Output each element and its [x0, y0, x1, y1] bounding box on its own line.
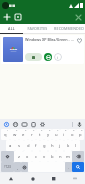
button[interactable]: d: [24, 140, 32, 151]
staticText: d: [27, 143, 30, 149]
button[interactable]: l: [72, 140, 80, 151]
staticText: f: [35, 143, 37, 149]
staticText: z: [18, 154, 20, 160]
button[interactable]: u: [52, 129, 60, 140]
button[interactable]: g: [40, 140, 48, 151]
staticText: i: [63, 132, 65, 138]
button[interactable]: Favorite: [76, 37, 82, 43]
button[interactable]: j: [56, 140, 64, 151]
button[interactable]: c: [32, 151, 40, 162]
button[interactable]: ,: [14, 162, 21, 172]
staticText: ?123: [4, 165, 11, 169]
button[interactable]: Close: [73, 12, 83, 22]
button[interactable]: Google: [2, 120, 11, 128]
staticText: c: [35, 154, 38, 160]
button[interactable]: FAVORITES: [23, 24, 52, 33]
button[interactable]: q: [1, 129, 10, 140]
staticText: p: [79, 132, 82, 138]
staticText: 8: [65, 129, 67, 132]
staticText: o: [71, 132, 74, 138]
button[interactable]: s: [15, 140, 24, 151]
button[interactable]: b: [48, 151, 56, 162]
staticText: .: [68, 165, 70, 170]
button[interactable]: y: [44, 129, 52, 140]
staticText: 9: [73, 129, 75, 132]
staticText: s: [18, 143, 21, 149]
staticText: a: [9, 143, 12, 149]
button[interactable]: ALL: [0, 24, 23, 33]
staticText: Windows XP Bliss/Green - Goo...: [25, 37, 75, 42]
button[interactable]: w: [10, 129, 19, 140]
staticText: 2: [16, 129, 18, 132]
button[interactable]: Home: [22, 173, 43, 184]
staticText: ALL: [8, 26, 15, 31]
staticText: y: [47, 132, 50, 138]
staticText: 6: [49, 129, 51, 132]
button[interactable]: r: [28, 129, 36, 140]
staticText: 5: [41, 129, 43, 132]
staticText: 1: [7, 129, 9, 132]
button[interactable]: Emoji: [21, 162, 28, 172]
button[interactable]: o: [68, 129, 76, 140]
button[interactable]: Windows XP Bliss/Green - Goo...: [1, 35, 84, 64]
button[interactable]: Settings: [38, 120, 47, 128]
button[interactable]: m: [64, 151, 72, 162]
button[interactable]: a: [6, 140, 15, 151]
staticText: v: [43, 154, 46, 160]
button[interactable]: Add: [2, 12, 12, 22]
button[interactable]: Keyboard switch: [64, 173, 85, 184]
button[interactable]: Recents: [43, 173, 64, 184]
staticText: g: [43, 143, 46, 149]
button[interactable]: Backspace: [72, 151, 84, 162]
button[interactable]: Shift: [1, 151, 14, 162]
button[interactable]: [25, 53, 42, 61]
staticText: e: [22, 132, 25, 138]
button[interactable]: Gallery: [13, 12, 23, 22]
staticText: FAVORITES: [27, 26, 48, 31]
staticText: 0: [81, 129, 83, 132]
button[interactable]: t: [36, 129, 44, 140]
staticText: j: [59, 143, 61, 149]
button[interactable]: Back: [0, 173, 22, 184]
button[interactable]: Voice input: [75, 120, 83, 128]
staticText: r: [31, 132, 33, 138]
staticText: u: [55, 132, 58, 138]
button[interactable]: .: [65, 162, 72, 172]
button[interactable]: h: [48, 140, 56, 151]
staticText: n: [59, 154, 62, 160]
staticText: b: [51, 154, 54, 160]
staticText: 3: [25, 129, 27, 132]
button[interactable]: x: [23, 151, 32, 162]
button[interactable]: Search: [72, 162, 84, 172]
button[interactable]: i: [60, 129, 68, 140]
button[interactable]: Clipboard: [29, 120, 38, 128]
button[interactable]: n: [56, 151, 64, 162]
button[interactable]: More info: [54, 53, 62, 61]
button[interactable]: z: [14, 151, 23, 162]
staticText: l: [75, 143, 77, 149]
staticText: h: [51, 143, 54, 149]
staticText: k: [67, 143, 70, 149]
staticText: RECOMMENDED: [54, 26, 84, 31]
staticText: 7: [57, 129, 59, 132]
staticText: x: [26, 154, 29, 160]
staticText: t: [39, 132, 41, 138]
button[interactable]: ?123: [1, 162, 14, 172]
button[interactable]: p: [76, 129, 84, 140]
staticText: q: [4, 132, 7, 138]
staticText: ,: [17, 165, 19, 170]
staticText: w: [13, 132, 17, 138]
button[interactable]: RECOMMENDED: [52, 24, 85, 33]
button[interactable]: GIF: [20, 120, 29, 128]
button[interactable]: Set wallpaper: [44, 53, 52, 61]
button[interactable]: Stickers: [11, 120, 20, 128]
button[interactable]: k: [64, 140, 72, 151]
button[interactable]: e: [19, 129, 28, 140]
staticText: m: [66, 154, 70, 160]
button[interactable]: f: [32, 140, 40, 151]
staticText: i: [57, 55, 59, 60]
staticText: 4: [33, 129, 35, 132]
button[interactable]: v: [40, 151, 48, 162]
